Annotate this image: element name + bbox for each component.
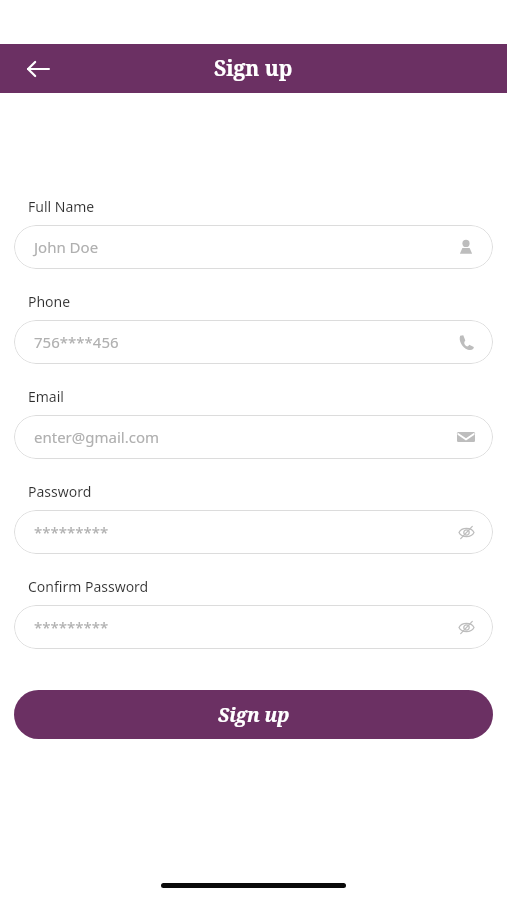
button[interactable]: enter@gmail.com xyxy=(14,415,493,459)
staticText: ********* xyxy=(34,617,458,637)
button[interactable]: ********* xyxy=(14,510,493,554)
staticText: Full Name xyxy=(28,197,95,216)
staticText: ********* xyxy=(34,522,458,542)
staticText: Sign up xyxy=(218,702,290,728)
staticText: Confirm Password xyxy=(28,577,149,596)
staticText: Password xyxy=(28,482,92,501)
staticText: Email xyxy=(28,387,64,406)
staticText: John Doe xyxy=(34,237,457,257)
button[interactable]: Sign up xyxy=(14,690,493,739)
button[interactable]: John Doe xyxy=(14,225,493,269)
button[interactable]: Back xyxy=(18,49,58,89)
staticText: enter@gmail.com xyxy=(34,427,457,447)
staticText: 756****456 xyxy=(34,332,458,352)
button[interactable]: 756****456 xyxy=(14,320,493,364)
staticText: Sign up xyxy=(214,54,293,83)
button[interactable]: ********* xyxy=(14,605,493,649)
staticText: Phone xyxy=(28,292,71,311)
